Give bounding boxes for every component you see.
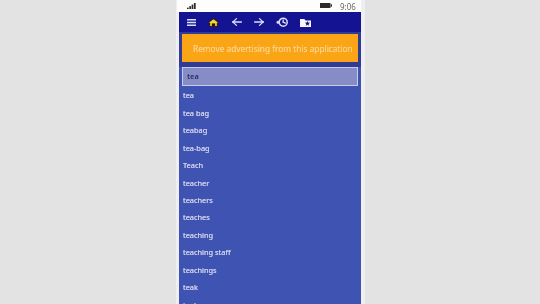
button[interactable]: teaches xyxy=(179,208,361,225)
staticText: teaks xyxy=(183,300,202,304)
button[interactable]: Home xyxy=(207,13,219,31)
staticText: teaching staff xyxy=(183,247,231,257)
button[interactable]: Bookmarks xyxy=(299,13,311,31)
staticText: Remove advertising from this application xyxy=(193,43,353,54)
staticText: teachings xyxy=(183,265,217,275)
button[interactable]: Teach xyxy=(179,156,361,173)
staticText: tea xyxy=(187,71,199,81)
staticText: teabag xyxy=(183,125,208,135)
staticText: tea xyxy=(183,90,194,100)
button[interactable]: tea-bag xyxy=(179,139,361,156)
staticText: tea bag xyxy=(183,108,210,118)
button[interactable]: teaks xyxy=(179,296,361,304)
button[interactable]: Forward xyxy=(253,13,265,31)
button[interactable]: teaching xyxy=(179,226,361,243)
staticText: 9:06 xyxy=(340,1,356,12)
button[interactable]: History xyxy=(276,13,288,31)
button[interactable]: tea bag xyxy=(179,104,361,121)
button[interactable]: teacher xyxy=(179,174,361,191)
button[interactable]: teak xyxy=(179,278,361,295)
button[interactable]: Remove advertising from this application xyxy=(182,34,358,62)
staticText: teachers xyxy=(183,195,213,205)
staticText: teaching xyxy=(183,230,214,240)
button[interactable]: tea xyxy=(179,86,361,103)
button[interactable]: Back xyxy=(231,13,243,31)
staticText: Teach xyxy=(183,160,204,170)
staticText: teak xyxy=(183,282,198,292)
button[interactable]: teabag xyxy=(179,121,361,138)
button[interactable]: teachers xyxy=(179,191,361,208)
button[interactable]: tea xyxy=(182,67,358,86)
button[interactable]: teaching staff xyxy=(179,243,361,260)
staticText: tea-bag xyxy=(183,143,210,153)
staticText: teacher xyxy=(183,178,210,188)
button[interactable]: Menu xyxy=(185,13,197,31)
staticText: teaches xyxy=(183,212,210,222)
button[interactable]: teachings xyxy=(179,261,361,278)
